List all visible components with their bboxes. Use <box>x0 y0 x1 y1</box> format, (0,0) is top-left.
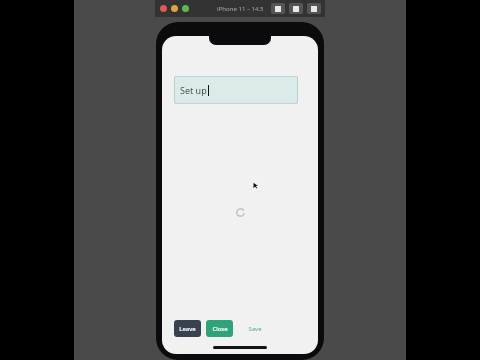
button[interactable]: Close <box>206 320 233 337</box>
button[interactable]: Set up <box>174 76 298 104</box>
button[interactable]: Leave <box>174 320 201 337</box>
button[interactable]: Home <box>289 3 303 14</box>
staticText: Set up <box>180 84 207 96</box>
staticText: Close <box>212 325 228 333</box>
button[interactable]: Zoom window <box>182 5 189 12</box>
button[interactable]: Screenshot <box>271 3 285 14</box>
staticText: iPhone 11 – 14.5 <box>217 5 264 13</box>
button[interactable]: Rotate <box>307 3 321 14</box>
button[interactable]: Close window <box>160 5 167 12</box>
staticText: Leave <box>179 325 196 333</box>
staticText: Save <box>248 325 262 333</box>
button[interactable]: Save <box>243 320 267 337</box>
button[interactable]: Minimize window <box>171 5 178 12</box>
